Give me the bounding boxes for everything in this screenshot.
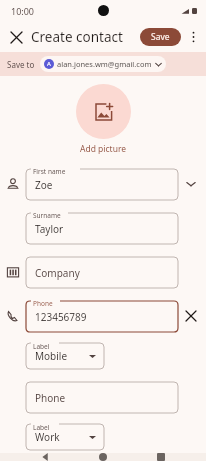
button[interactable]: Taylor xyxy=(26,213,178,244)
staticText: Zoe xyxy=(35,178,53,192)
staticText: 10:00 xyxy=(11,5,35,17)
button[interactable]: Clear phone xyxy=(183,308,199,324)
staticText: alan.jones.wm@gmail.com xyxy=(57,59,152,69)
button[interactable]: Zoe xyxy=(26,169,178,200)
button[interactable]: Expand name fields xyxy=(183,176,199,192)
button[interactable]: Recent apps xyxy=(148,453,174,461)
staticText: Phone xyxy=(33,299,53,308)
button[interactable]: Back xyxy=(32,453,58,461)
staticText: Taylor xyxy=(35,222,64,236)
button[interactable]: Add picture xyxy=(76,84,131,139)
staticText: 123456789 xyxy=(35,310,87,324)
staticText: Surname xyxy=(33,211,61,220)
button[interactable]: Work xyxy=(26,424,104,450)
staticText: Work xyxy=(35,430,60,444)
button[interactable]: Company xyxy=(26,257,178,288)
staticText: Phone xyxy=(35,391,66,405)
button[interactable]: A xyxy=(40,56,166,72)
staticText: A xyxy=(47,60,51,68)
button[interactable]: Mobile xyxy=(26,343,104,369)
button[interactable]: Close xyxy=(5,26,27,48)
staticText: Label xyxy=(33,342,50,351)
staticText: First name xyxy=(33,167,66,176)
staticText: Label xyxy=(33,423,50,432)
staticText: Add picture xyxy=(80,143,127,155)
button[interactable]: Home xyxy=(90,453,116,461)
staticText: Create contact xyxy=(31,28,123,46)
button[interactable]: Phone xyxy=(26,382,178,413)
staticText: Mobile xyxy=(35,349,68,363)
button[interactable]: 123456789 xyxy=(26,301,178,332)
staticText: Save xyxy=(151,31,170,43)
staticText: Company xyxy=(35,266,80,280)
button[interactable]: More options xyxy=(183,27,203,47)
staticText: Save to xyxy=(7,59,35,70)
button[interactable]: Save xyxy=(140,28,181,46)
